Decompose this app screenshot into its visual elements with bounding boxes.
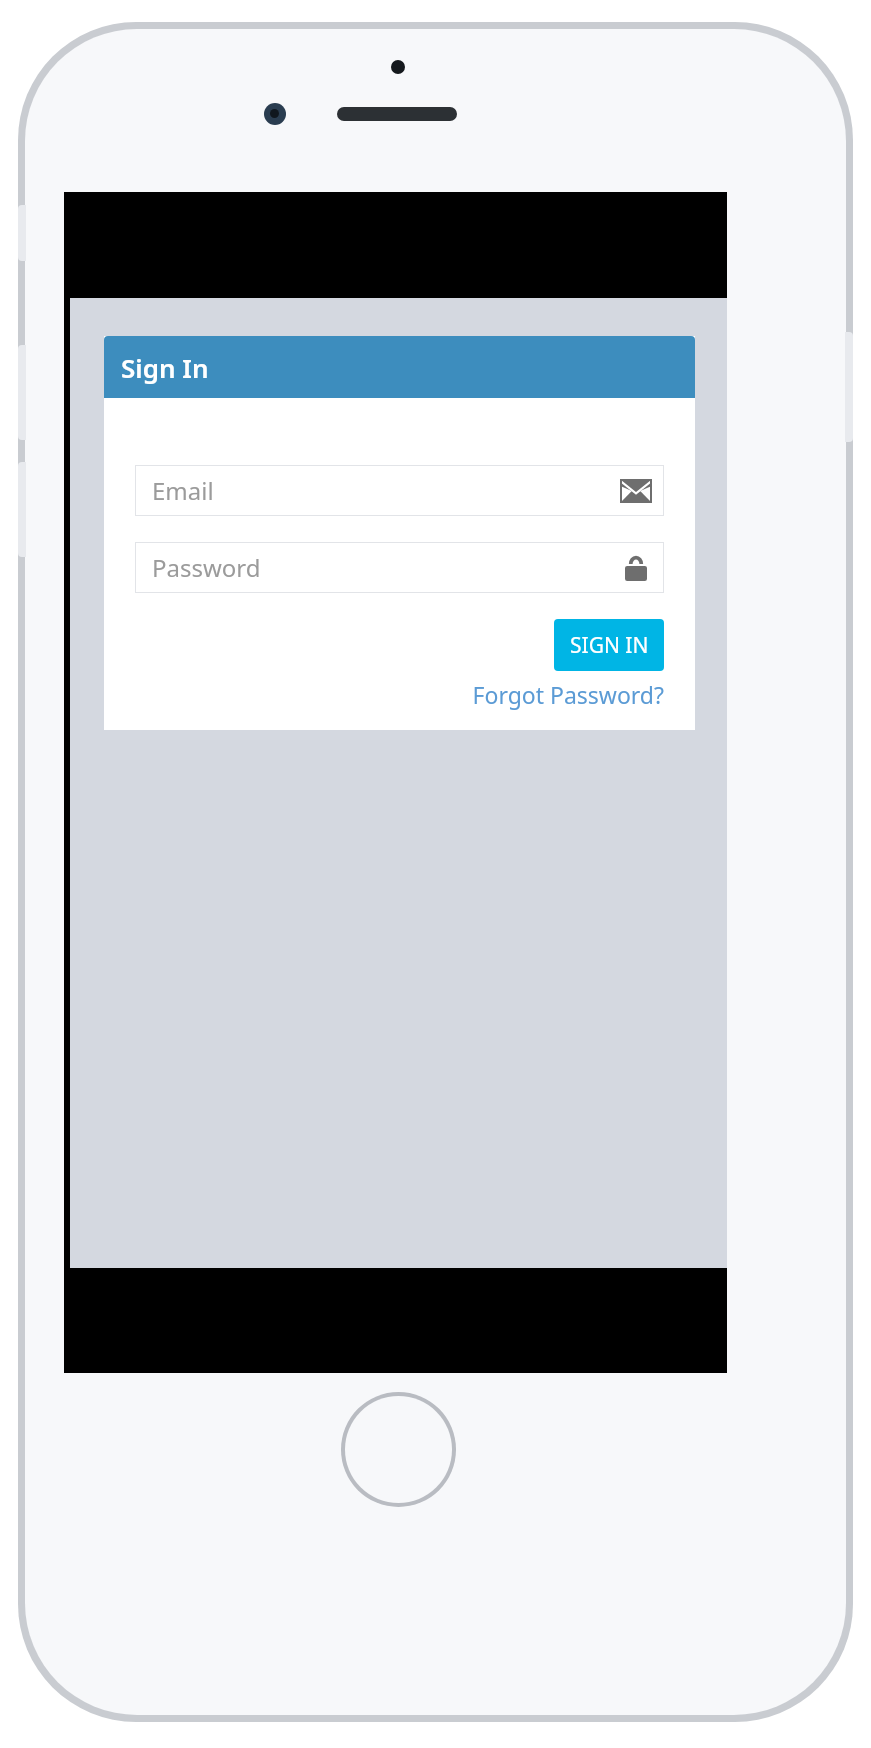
staticText: SIGN IN [570, 631, 649, 660]
other: Password [621, 553, 651, 583]
staticText: Sign In [121, 350, 209, 385]
staticText: Email [152, 474, 214, 507]
other: Email [621, 476, 651, 506]
button[interactable]: Forgot Password? [472, 679, 664, 710]
button[interactable]: Password [135, 542, 664, 593]
staticText: Forgot Password? [472, 679, 664, 710]
staticText: Password [152, 551, 261, 584]
button[interactable]: SIGN IN [554, 619, 664, 671]
button[interactable]: Email [135, 465, 664, 516]
